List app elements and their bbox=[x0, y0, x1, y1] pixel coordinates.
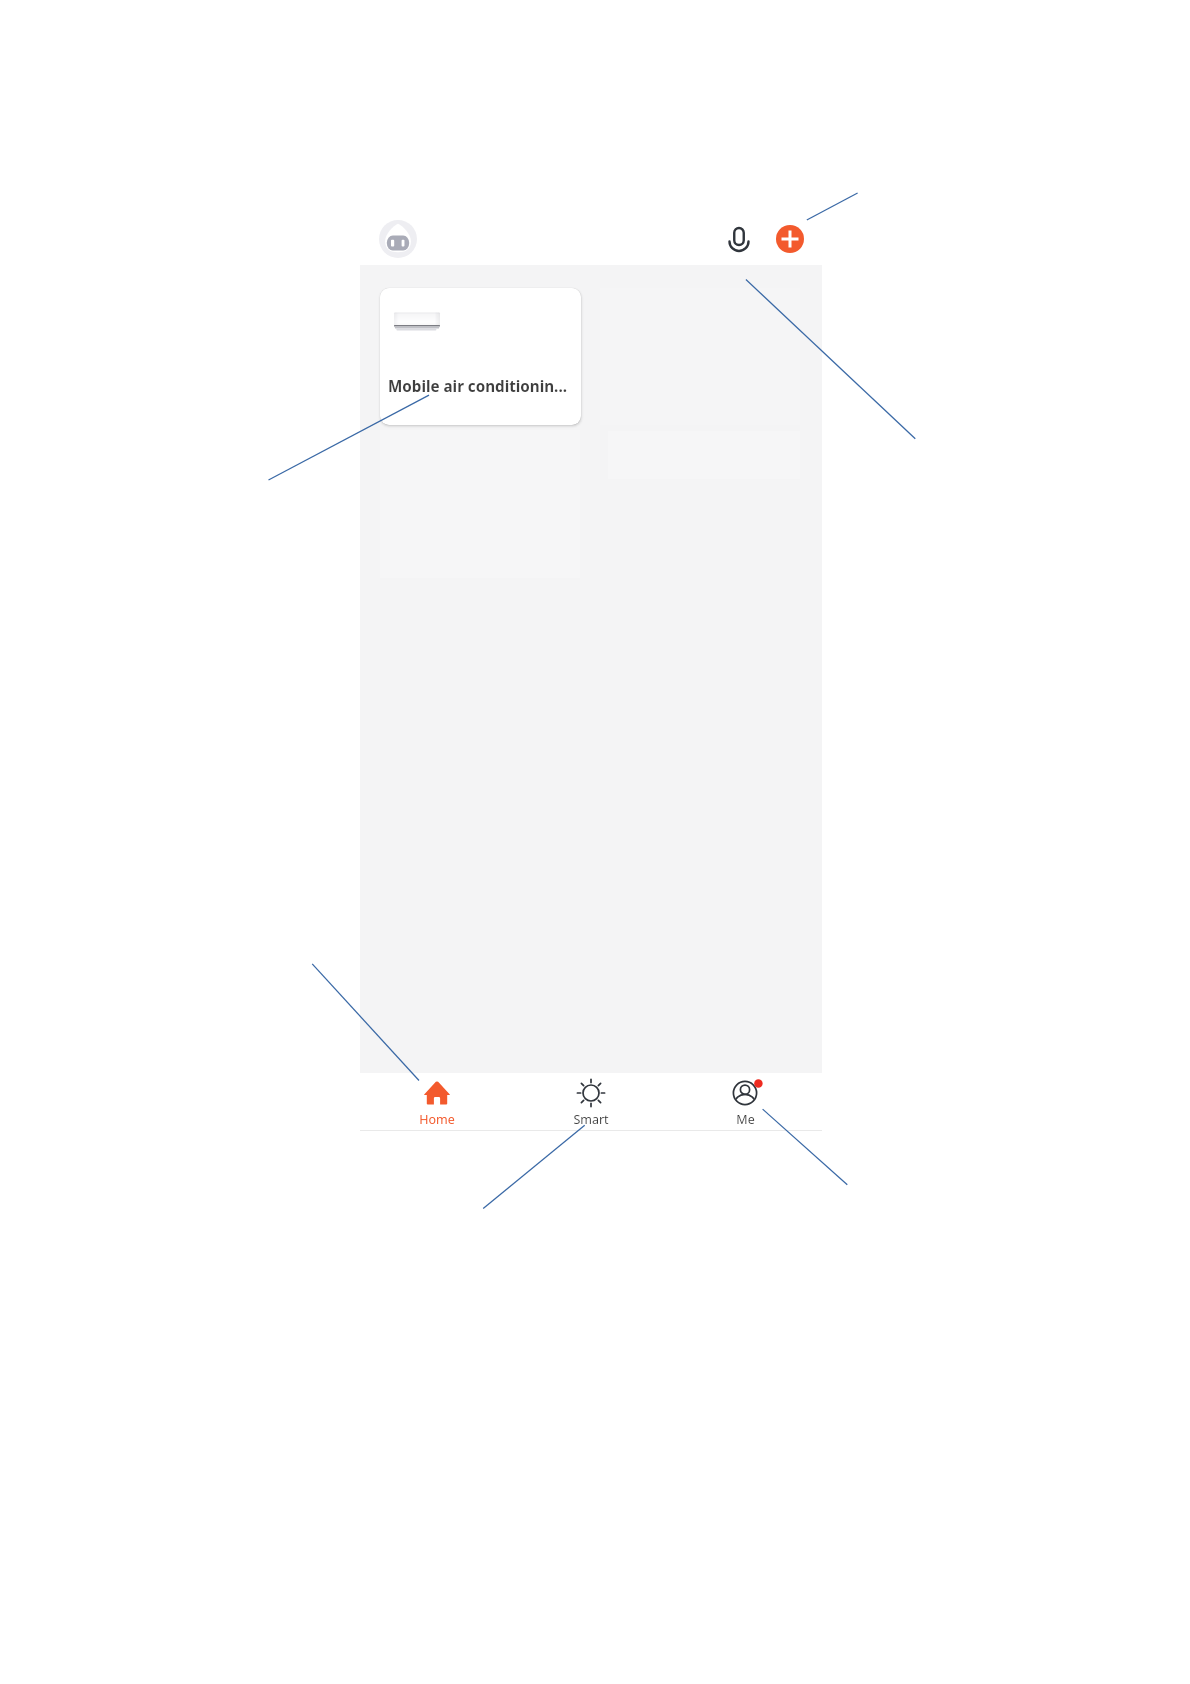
button[interactable]: Mobile air conditionin... bbox=[380, 288, 581, 425]
button[interactable]: Add device bbox=[776, 225, 804, 253]
button[interactable]: Home bbox=[360, 1073, 514, 1130]
button[interactable]: Voice control bbox=[723, 223, 755, 255]
button[interactable]: Profile bbox=[379, 220, 417, 258]
staticText: Smart bbox=[573, 1111, 609, 1128]
staticText: Me bbox=[736, 1111, 755, 1128]
button[interactable]: Smart bbox=[514, 1073, 668, 1130]
button[interactable]: Me bbox=[668, 1073, 822, 1130]
staticText: Mobile air conditionin... bbox=[388, 376, 567, 397]
staticText: Home bbox=[419, 1111, 455, 1128]
